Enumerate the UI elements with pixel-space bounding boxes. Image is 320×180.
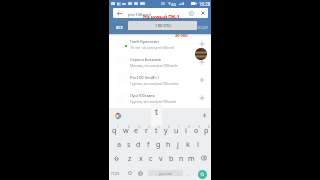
button[interactable]: l <box>193 137 203 151</box>
staticText: c <box>149 153 153 163</box>
button[interactable]: Add friend <box>198 94 206 102</box>
staticText: j <box>177 139 179 149</box>
staticText: g <box>156 139 161 149</box>
staticText: Группа, vk.com/pro100smih <box>130 99 177 104</box>
button[interactable]: g <box>153 137 163 151</box>
button[interactable]: r <box>141 123 151 137</box>
button[interactable]: русский <box>148 170 183 176</box>
staticText: l <box>197 139 199 149</box>
staticText: u <box>174 125 179 135</box>
button[interactable]: Clear <box>200 10 206 16</box>
button[interactable]: Change language <box>137 170 143 176</box>
staticText: 4G <box>171 2 177 7</box>
button[interactable]: q <box>109 123 120 137</box>
staticText: s <box>127 139 131 149</box>
staticText: t <box>155 106 158 117</box>
button[interactable]: Add friend <box>198 76 206 84</box>
button[interactable]: p <box>201 123 211 137</box>
staticText: 1 КБ (0%) <box>155 23 171 28</box>
staticText: 16 лет, vk.com/pro100smil <box>130 45 174 50</box>
staticText: 2 <box>128 125 130 129</box>
button[interactable]: b <box>166 151 176 165</box>
staticText: Про100смих <box>130 93 155 99</box>
staticText: n <box>179 153 184 163</box>
staticText: 5 <box>158 125 160 129</box>
button[interactable]: f <box>143 137 153 151</box>
button[interactable]: s <box>124 137 133 151</box>
button[interactable]: k <box>183 137 193 151</box>
button[interactable]: d <box>133 137 143 151</box>
staticText: t <box>155 125 158 135</box>
button[interactable]: Глеб Красотин <box>109 35 211 53</box>
staticText: Группа, vk.com/pro100smilee <box>130 81 179 86</box>
staticText: 9 <box>198 125 200 129</box>
button[interactable]: z <box>124 151 135 165</box>
button[interactable]: Серега Богачев <box>109 53 211 71</box>
staticText: 3 <box>138 125 140 129</box>
staticText: ВСЕ <box>116 25 123 30</box>
staticText: e <box>134 125 139 135</box>
staticText: q <box>112 125 117 135</box>
button[interactable]: Google search <box>115 113 121 119</box>
button[interactable]: ?123 <box>110 165 120 180</box>
button[interactable]: Shift <box>109 151 124 165</box>
button[interactable]: e <box>131 123 141 137</box>
staticText: Pro100 SmilE=) <box>130 75 159 81</box>
staticText: 0 <box>208 125 210 129</box>
staticText: z <box>128 153 132 163</box>
button[interactable]: Add friend <box>198 40 206 48</box>
button[interactable]: i <box>181 123 191 137</box>
staticText: b <box>169 153 174 163</box>
staticText: p <box>204 125 209 135</box>
staticText: i <box>185 125 187 135</box>
button[interactable]: x <box>135 151 146 165</box>
button[interactable]: Pro100 SmilE=) <box>109 71 211 89</box>
staticText: w <box>123 125 129 135</box>
staticText: v <box>159 153 163 163</box>
button[interactable]: Search <box>198 170 207 179</box>
button[interactable]: Emoji <box>127 170 133 176</box>
button[interactable]: y <box>161 123 171 137</box>
staticText: Москва, vk.com/pro100smile <box>130 63 178 68</box>
button[interactable]: t <box>151 123 161 137</box>
staticText: 1 <box>117 125 119 129</box>
button[interactable]: a <box>115 137 124 151</box>
button[interactable]: v <box>156 151 166 165</box>
button[interactable]: n <box>176 151 186 165</box>
button[interactable]: o <box>191 123 201 137</box>
button[interactable]: h <box>163 137 173 151</box>
staticText: . <box>187 171 189 176</box>
button[interactable]: Backspace <box>196 151 211 165</box>
button[interactable]: u <box>171 123 181 137</box>
button[interactable]: Voice search <box>189 11 194 16</box>
staticText: h <box>166 139 171 149</box>
button[interactable]: w <box>120 123 131 137</box>
button[interactable]: . <box>185 171 190 176</box>
staticText: 4 <box>148 125 150 129</box>
staticText: m <box>188 153 195 163</box>
button[interactable]: Back <box>116 10 123 17</box>
button[interactable]: m <box>186 151 196 165</box>
staticText: Глеб Красотин <box>130 39 159 45</box>
staticText: На новый ПК-1 <box>143 14 180 21</box>
staticText: ЛЮДИ <box>196 25 208 30</box>
button[interactable]: Voice input <box>202 113 207 118</box>
staticText: 16:28 <box>199 1 211 7</box>
staticText: f <box>147 139 150 149</box>
button[interactable]: j <box>173 137 183 151</box>
button[interactable]: c <box>146 151 156 165</box>
staticText: 7 <box>178 125 180 129</box>
button[interactable]: Про100смих <box>109 89 211 107</box>
staticText: pro100smil <box>128 11 151 17</box>
staticText: x <box>139 153 143 163</box>
staticText: y <box>164 125 168 135</box>
button[interactable]: Back <box>113 8 208 18</box>
staticText: a <box>117 139 122 149</box>
button[interactable]: ВСЕ <box>110 20 128 34</box>
staticText: d <box>136 139 141 149</box>
button[interactable]: Add friend <box>198 58 206 66</box>
button[interactable]: ЛЮДИ <box>193 20 211 34</box>
staticText: o <box>194 125 199 135</box>
staticText: русский <box>159 171 172 176</box>
staticText: Серега Богачев <box>130 57 161 63</box>
